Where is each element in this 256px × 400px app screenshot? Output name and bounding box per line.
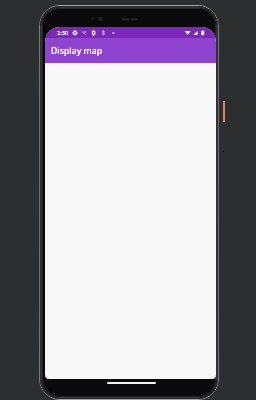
other: Home (107, 382, 156, 384)
staticText: 2:30 (57, 29, 69, 37)
staticText: Display map (51, 45, 103, 57)
button[interactable]: Display map (45, 38, 216, 63)
